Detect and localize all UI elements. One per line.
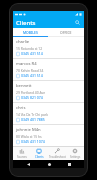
- staticText: 0349 401 7885: [21, 117, 45, 122]
- button[interactable]: Settings: [66, 147, 84, 160]
- staticText: 29 Portland 40 Ave: [16, 90, 46, 94]
- staticText: chris: [16, 105, 26, 111]
- button[interactable]: Search: [73, 18, 82, 27]
- button[interactable]: Troubleshoot: [48, 147, 66, 160]
- staticText: Troubleshoot: [49, 155, 66, 159]
- staticText: 0345 821 074: [21, 95, 43, 100]
- staticText: Clients: [16, 19, 36, 27]
- button[interactable]: Sources: [13, 147, 30, 160]
- staticText: 0345 431 514: [21, 73, 43, 78]
- button[interactable]: Home: [44, 160, 54, 168]
- staticText: bennett: [16, 83, 32, 89]
- button[interactable]: bennett: [13, 81, 84, 102]
- button[interactable]: marcos R4: [13, 59, 84, 80]
- staticText: Sources: [17, 155, 27, 159]
- button[interactable]: Recents: [64, 160, 74, 168]
- staticText: charlie: [16, 39, 30, 45]
- staticText: johnnie M4n: [16, 127, 41, 133]
- button[interactable]: chris: [13, 103, 84, 124]
- staticText: 15 Rotunda st 12: [16, 46, 43, 50]
- staticText: 14 Via Da Tr Chi park: [16, 112, 48, 116]
- button[interactable]: Back: [23, 160, 33, 168]
- button[interactable]: johnnie M4n: [13, 125, 84, 146]
- button[interactable]: MOBILES: [13, 28, 48, 36]
- button[interactable]: charlie: [13, 37, 84, 58]
- staticText: Clients: [35, 155, 44, 159]
- staticText: Settings: [70, 155, 81, 159]
- staticText: MOBILES: [23, 30, 38, 35]
- staticText: OFFICE: [60, 30, 72, 35]
- staticText: 0345 431 1074: [21, 139, 45, 144]
- staticText: 70 Kelvin Road 34: [16, 68, 44, 72]
- staticText: 0345 431 514: [21, 51, 43, 56]
- staticText: marcos R4: [16, 61, 37, 67]
- button[interactable]: OFFICE: [48, 28, 84, 36]
- button[interactable]: Clients: [30, 147, 48, 160]
- staticText: 80 Wisla st 15 hs: [16, 134, 42, 138]
